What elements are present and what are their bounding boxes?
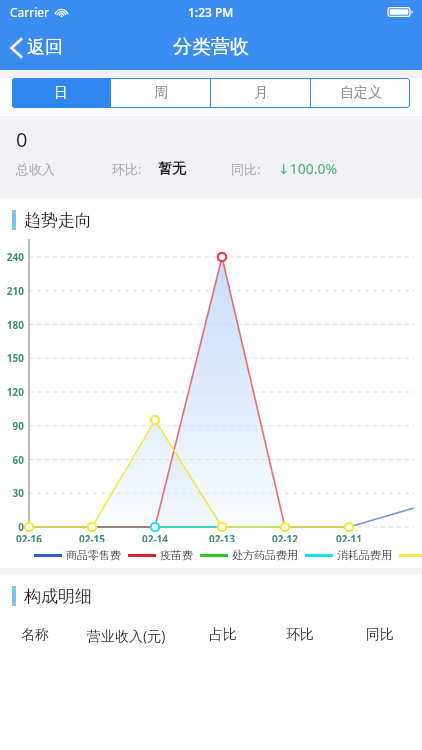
staticText: 消耗品费用 <box>337 548 392 562</box>
staticText: 返回 <box>27 36 63 59</box>
staticText: 趋势走向 <box>24 210 92 231</box>
button[interactable]: 周 <box>111 78 210 108</box>
staticText: 同比 <box>366 626 394 644</box>
staticText: 210 <box>0 284 24 298</box>
staticText: 名称 <box>21 626 49 644</box>
staticText: 环比 <box>286 626 314 644</box>
button[interactable]: 自定义 <box>311 78 410 108</box>
staticText: 月 <box>254 84 268 102</box>
staticText: 0 <box>0 520 24 534</box>
staticText: 240 <box>0 250 24 264</box>
staticText: 营业收入(元) <box>87 626 166 645</box>
staticText: 日 <box>54 84 68 102</box>
staticText: 同比: <box>231 160 261 178</box>
staticText: 60 <box>0 453 24 467</box>
staticText: 02-14 <box>134 532 176 546</box>
staticText: 暂无 <box>158 160 186 178</box>
staticText: 疫苗费 <box>160 548 193 562</box>
staticText: 处方药品费用 <box>232 548 298 562</box>
staticText: 180 <box>0 318 24 332</box>
staticText: 150 <box>0 351 24 365</box>
staticText: 自定义 <box>340 84 382 102</box>
staticText: 02-12 <box>264 532 306 546</box>
staticText: 02-11 <box>328 532 370 546</box>
staticText: 30 <box>0 486 24 500</box>
staticText: 总收入 <box>16 161 55 177</box>
staticText: 商品零售费 <box>66 548 121 562</box>
staticText: 1:23 PM <box>188 4 234 20</box>
staticText: 02-13 <box>201 532 243 546</box>
staticText: 周 <box>154 84 168 102</box>
staticText: Carrier <box>10 4 50 20</box>
staticText: ↓100.0% <box>278 159 338 178</box>
staticText: 120 <box>0 385 24 399</box>
staticText: 环比: <box>112 160 142 178</box>
staticText: 构成明细 <box>24 586 92 607</box>
staticText: 0 <box>16 126 28 153</box>
staticText: 分类营收 <box>173 35 249 59</box>
button[interactable]: 日 <box>12 78 110 108</box>
staticText: 02-15 <box>71 532 113 546</box>
staticText: 占比 <box>209 626 237 644</box>
staticText: 02-16 <box>8 532 50 546</box>
button[interactable]: 返回 <box>0 32 77 63</box>
button[interactable]: 月 <box>211 78 310 108</box>
staticText: 90 <box>0 419 24 433</box>
